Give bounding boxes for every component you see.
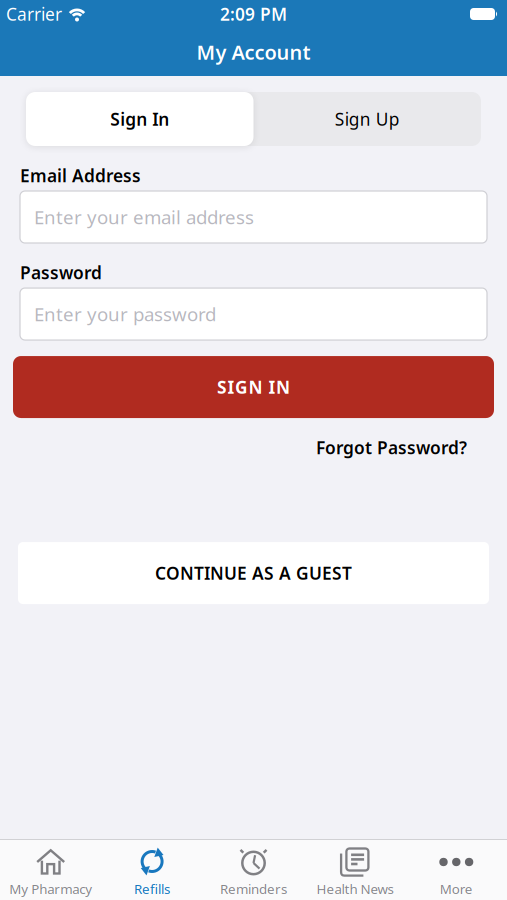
staticText: My Account bbox=[196, 39, 310, 65]
staticText: 2:09 PM bbox=[220, 2, 287, 25]
staticText: My Pharmacy bbox=[9, 880, 92, 898]
button[interactable]: Reminders bbox=[203, 840, 304, 898]
button[interactable]: Health News bbox=[304, 840, 406, 898]
button[interactable]: Enter your password bbox=[20, 288, 487, 340]
staticText: CONTINUE AS A GUEST bbox=[155, 561, 352, 584]
staticText: Enter your password bbox=[34, 302, 216, 326]
button[interactable]: Forgot Password? bbox=[316, 436, 467, 459]
staticText: Refills bbox=[134, 880, 170, 898]
staticText: Sign In bbox=[110, 107, 169, 130]
button[interactable]: Sign In bbox=[26, 92, 253, 146]
staticText: Sign Up bbox=[335, 107, 400, 130]
button[interactable]: My Pharmacy bbox=[0, 840, 101, 898]
button[interactable]: Refills bbox=[101, 840, 203, 898]
button[interactable]: CONTINUE AS A GUEST bbox=[18, 542, 489, 604]
staticText: Enter your email address bbox=[34, 205, 254, 229]
staticText: Password bbox=[20, 261, 102, 284]
staticText: Forgot Password? bbox=[316, 436, 467, 459]
staticText: Carrier bbox=[6, 2, 62, 25]
button[interactable]: SIGN IN bbox=[13, 356, 494, 418]
staticText: Email Address bbox=[20, 164, 141, 187]
staticText: More bbox=[440, 880, 473, 898]
staticText: SIGN IN bbox=[217, 375, 290, 398]
staticText: Health News bbox=[316, 880, 393, 898]
button[interactable]: More bbox=[406, 840, 507, 898]
staticText: Reminders bbox=[220, 880, 287, 898]
button[interactable]: Enter your email address bbox=[20, 191, 487, 243]
button[interactable]: Sign Up bbox=[253, 92, 481, 146]
